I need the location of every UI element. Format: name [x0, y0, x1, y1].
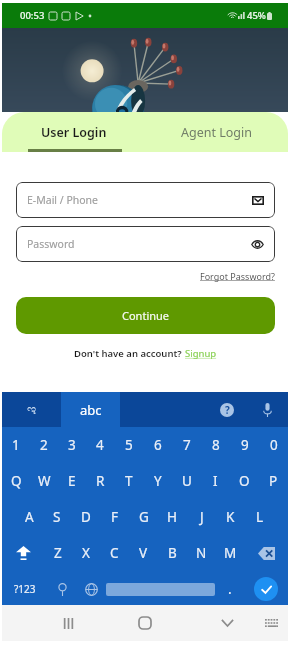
staticText: V	[139, 544, 148, 562]
button[interactable]: S	[43, 499, 71, 535]
staticText: 00:53	[20, 9, 45, 22]
button[interactable]: W	[30, 463, 58, 499]
staticText: Continue	[122, 308, 170, 323]
button[interactable]: B	[158, 535, 187, 571]
staticText: 6	[154, 436, 162, 454]
button[interactable]: Hide keyboard	[251, 605, 291, 641]
staticText: ?123	[14, 582, 36, 596]
staticText: Y	[154, 472, 162, 490]
button[interactable]: Agent Login	[145, 112, 288, 152]
button[interactable]: 0	[259, 427, 288, 463]
button[interactable]: Recents	[48, 605, 88, 641]
button[interactable]: M	[216, 535, 245, 571]
button[interactable]: U	[172, 463, 201, 499]
staticText: 45%	[247, 9, 266, 22]
staticText: D	[81, 508, 91, 526]
staticText: 2	[40, 436, 48, 454]
button[interactable]: Change language	[77, 571, 106, 607]
button[interactable]: J	[187, 499, 216, 535]
button[interactable]: R	[86, 463, 114, 499]
button[interactable]: 5	[114, 427, 143, 463]
button[interactable]: Back	[207, 605, 247, 641]
button[interactable]: P	[259, 463, 288, 499]
button[interactable]: I	[201, 463, 230, 499]
staticText: H	[167, 508, 178, 526]
button[interactable]: 8	[201, 427, 230, 463]
button[interactable]: Q	[2, 463, 30, 499]
button[interactable]: E	[58, 463, 86, 499]
staticText: E-Mail / Phone	[27, 193, 252, 207]
button[interactable]: 7	[172, 427, 201, 463]
button[interactable]: X	[72, 535, 100, 571]
button[interactable]: 1	[2, 427, 30, 463]
staticText: J	[200, 508, 204, 526]
button[interactable]: H	[158, 499, 187, 535]
staticText: abc	[80, 401, 102, 419]
button[interactable]: Home	[125, 605, 165, 641]
staticText: C	[110, 544, 119, 562]
button[interactable]: D	[71, 499, 100, 535]
staticText: A	[25, 508, 34, 526]
button[interactable]: K	[216, 499, 245, 535]
staticText: I	[213, 472, 218, 490]
staticText: Agent Login	[181, 124, 252, 141]
staticText: User Login	[41, 124, 107, 141]
button[interactable]: ?123	[2, 571, 47, 607]
button[interactable]: 4	[86, 427, 114, 463]
staticText: 7	[183, 436, 191, 454]
staticText: X	[82, 544, 90, 562]
staticText: W	[38, 472, 51, 490]
button[interactable]: abc	[61, 392, 120, 427]
button[interactable]: Space	[106, 571, 215, 607]
button[interactable]: T	[114, 463, 143, 499]
staticText: S	[53, 508, 61, 526]
button[interactable]: Password	[16, 226, 275, 262]
staticText: Don't have an account?	[74, 347, 185, 360]
button[interactable]: E-Mail / Phone	[16, 182, 275, 218]
button[interactable]: 2	[30, 427, 58, 463]
button[interactable]: O	[230, 463, 259, 499]
staticText: 8	[212, 436, 220, 454]
button[interactable]: Continue	[16, 297, 275, 334]
button[interactable]: Z	[44, 535, 72, 571]
staticText: 4	[96, 436, 104, 454]
staticText: E	[68, 472, 76, 490]
staticText: 9	[241, 436, 249, 454]
button[interactable]: Backspace	[245, 535, 288, 571]
button[interactable]: .	[215, 571, 244, 607]
staticText: T	[125, 472, 133, 490]
button[interactable]: Emoji	[47, 571, 77, 607]
staticText: B	[168, 544, 177, 562]
button[interactable]: Don't have an account?	[16, 347, 275, 360]
staticText: Password	[27, 237, 251, 251]
button[interactable]: N	[187, 535, 216, 571]
staticText: 1	[12, 436, 20, 454]
button[interactable]: G	[129, 499, 158, 535]
button[interactable]: Shift	[2, 535, 44, 571]
staticText: Forgot Password?	[200, 270, 275, 282]
button[interactable]: 9	[230, 427, 259, 463]
staticText: F	[111, 508, 119, 526]
staticText: 0	[270, 436, 278, 454]
button[interactable]: 3	[58, 427, 86, 463]
button[interactable]: Voice input	[250, 393, 284, 427]
button[interactable]: V	[129, 535, 158, 571]
button[interactable]: A	[15, 499, 43, 535]
button[interactable]: Help	[210, 393, 244, 427]
staticText: O	[239, 472, 250, 490]
staticText: Z	[54, 544, 62, 562]
staticText: ಇ	[27, 403, 37, 417]
button[interactable]: C	[100, 535, 129, 571]
button[interactable]: F	[100, 499, 129, 535]
button[interactable]: L	[245, 499, 274, 535]
staticText: L	[256, 508, 264, 526]
button[interactable]: Enter	[244, 571, 288, 607]
button[interactable]: ಇ	[2, 392, 61, 427]
staticText: G	[139, 508, 149, 526]
button[interactable]: User Login	[2, 112, 145, 152]
button[interactable]: 6	[143, 427, 172, 463]
button[interactable]: Forgot Password?	[200, 270, 275, 282]
button[interactable]: Y	[143, 463, 172, 499]
staticText: 3	[68, 436, 76, 454]
staticText: 5	[125, 436, 133, 454]
